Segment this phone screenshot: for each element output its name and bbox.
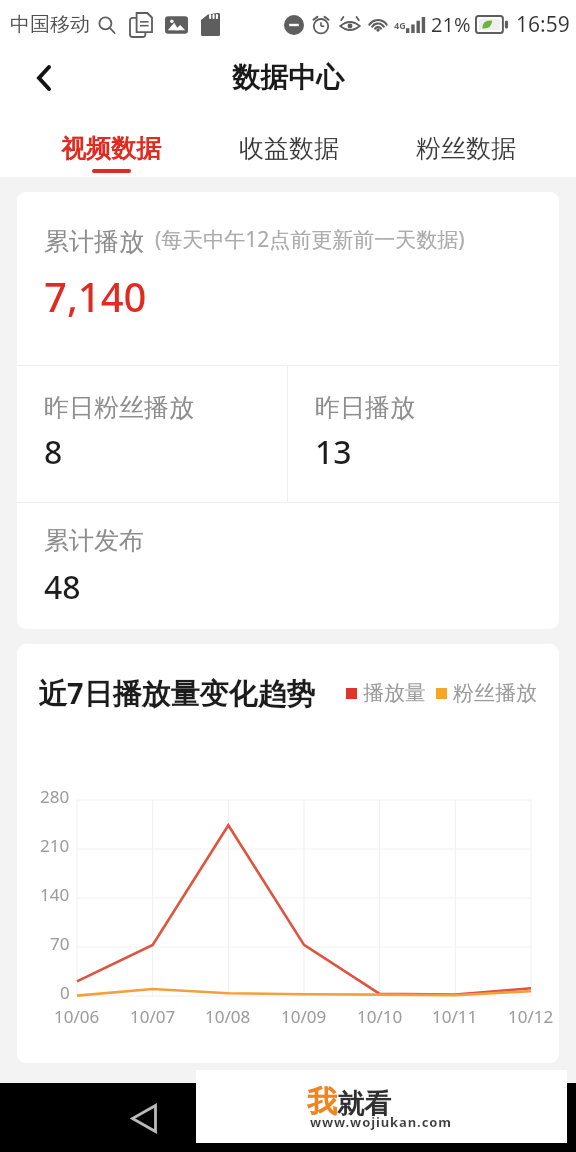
staticText: 48 [44,565,81,609]
button[interactable]: Back [20,54,68,102]
staticText: 0 [60,981,70,1004]
staticText: 收益数据 [239,133,339,164]
staticText: 累计发布 [44,525,144,556]
button[interactable]: 视频数据 [22,108,200,177]
button[interactable]: 收益数据 [200,108,377,177]
staticText: 10/08 [205,1005,251,1028]
staticText: 视频数据 [61,133,161,164]
staticText: 280 [40,785,70,808]
staticText: 就看 [337,1087,391,1121]
staticText: 昨日播放 [315,392,415,423]
staticText: 70 [50,932,70,955]
staticText: 10/06 [54,1005,100,1028]
staticText: (每天中午12点前更新前一天数据) [155,225,465,254]
staticText: 10/12 [508,1005,554,1028]
staticText: 7,140 [44,269,147,323]
staticText: 13 [315,430,352,474]
staticText: 近7日播放量变化趋势 [38,673,316,713]
staticText: 16:59 [516,10,570,39]
staticText: 昨日粉丝播放 [44,392,194,423]
button[interactable]: Back [118,1092,170,1144]
staticText: 10/09 [281,1005,327,1028]
staticText: 数据中心 [232,60,344,95]
staticText: 4G [394,19,406,31]
staticText: 140 [40,883,70,906]
staticText: 粉丝数据 [416,133,516,164]
staticText: 21% [431,11,471,38]
staticText: 10/07 [130,1005,176,1028]
staticText: 我 [307,1083,337,1121]
staticText: 中国移动 [10,12,90,37]
button[interactable]: 粉丝数据 [377,108,554,177]
staticText: 10/10 [357,1005,403,1028]
staticText: 8 [44,430,63,474]
staticText: www.wojiukan.com [310,1113,452,1131]
staticText: 粉丝播放 [453,680,537,706]
staticText: 播放量 [363,680,426,706]
staticText: 210 [40,834,70,857]
staticText: 累计播放 [44,226,144,257]
staticText: 10/11 [432,1005,478,1028]
